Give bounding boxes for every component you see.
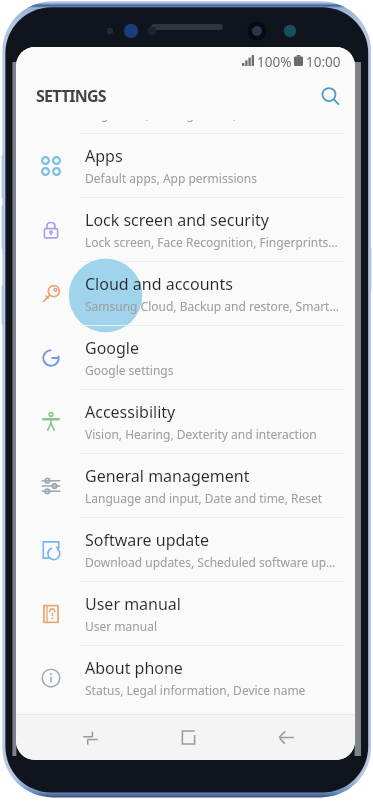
staticText: About phone	[85, 657, 183, 679]
button[interactable]: User manual	[16, 582, 355, 645]
button[interactable]: Cloud and accounts	[16, 262, 355, 325]
staticText: Brightness, Blue light filter, Home scre…	[85, 106, 314, 122]
staticText: Lock screen, Face Recognition, Fingerpri…	[85, 234, 338, 250]
button[interactable]: Recent apps	[64, 715, 116, 760]
staticText: Accessibility	[85, 401, 176, 423]
staticText: Cloud and accounts	[85, 273, 233, 295]
staticText: SETTINGS	[36, 85, 106, 107]
button[interactable]: Apps	[16, 134, 355, 197]
button[interactable]: About phone	[16, 646, 355, 709]
staticText: Google	[85, 337, 140, 359]
staticText: 100%	[257, 53, 292, 71]
staticText: Google settings	[85, 362, 174, 378]
staticText: Vision, Hearing, Dexterity and interacti…	[85, 426, 317, 442]
staticText: Status, Legal information, Device name	[85, 682, 306, 698]
staticText: Apps	[85, 145, 123, 167]
staticText: User manual	[85, 593, 181, 615]
staticText: Lock screen and security	[85, 209, 269, 231]
button[interactable]: Accessibility	[16, 390, 355, 453]
staticText: Samsung Cloud, Backup and restore, Smart…	[85, 298, 339, 314]
staticText: User manual	[85, 618, 157, 634]
staticText: Language and input, Date and time, Reset	[85, 490, 323, 506]
staticText: Software update	[85, 529, 210, 551]
button[interactable]: Search	[313, 79, 347, 113]
staticText: Default apps, App permissions	[85, 170, 257, 186]
staticText: Download updates, Scheduled software up…	[85, 554, 336, 570]
button[interactable]: Lock screen and security	[16, 198, 355, 261]
staticText: 10:00	[306, 53, 341, 71]
button[interactable]: Home	[162, 715, 214, 760]
button[interactable]: General management	[16, 454, 355, 517]
button[interactable]: Software update	[16, 518, 355, 581]
button[interactable]: Google	[16, 326, 355, 389]
button[interactable]: Back	[260, 715, 312, 760]
staticText: Display	[85, 81, 140, 103]
staticText: General management	[85, 465, 250, 487]
